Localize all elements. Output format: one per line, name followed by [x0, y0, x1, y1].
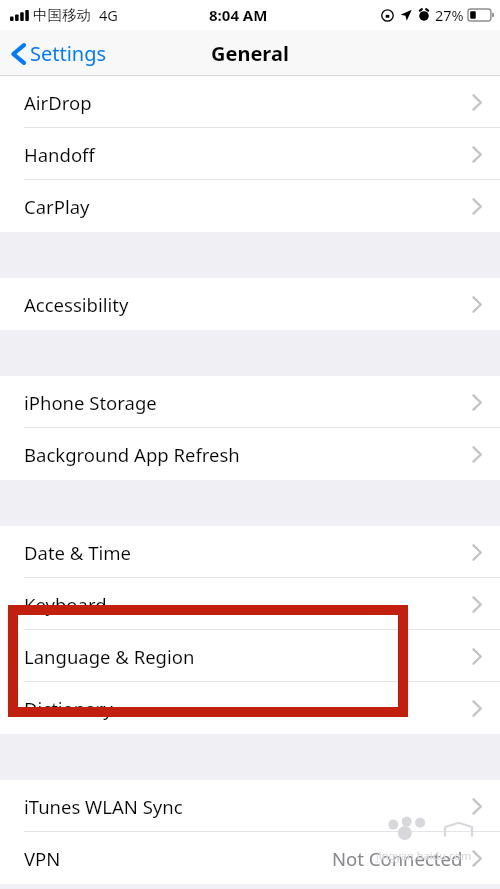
- button[interactable]: VPN: [0, 832, 500, 884]
- staticText: Not Connected: [332, 846, 463, 871]
- staticText: Language & Region: [24, 644, 195, 669]
- button[interactable]: AirDrop: [0, 76, 500, 128]
- button[interactable]: Keyboard: [0, 578, 500, 630]
- button[interactable]: Date & Time: [0, 526, 500, 578]
- button[interactable]: Background App Refresh: [0, 428, 500, 480]
- staticText: CarPlay: [24, 194, 90, 219]
- staticText: Keyboard: [24, 592, 107, 617]
- button[interactable]: Language & Region: [0, 630, 500, 682]
- button[interactable]: Handoff: [0, 128, 500, 180]
- staticText: 8:04 AM: [209, 5, 268, 25]
- button[interactable]: Dictionary: [0, 682, 500, 734]
- button[interactable]: Settings: [0, 34, 117, 73]
- staticText: Background App Refresh: [24, 442, 240, 467]
- staticText: AirDrop: [24, 90, 92, 115]
- staticText: Settings: [30, 40, 107, 67]
- button[interactable]: CarPlay: [0, 180, 500, 232]
- staticText: VPN: [24, 846, 61, 871]
- button[interactable]: iTunes WLAN Sync: [0, 780, 500, 832]
- staticText: jingyan.baidu.com: [376, 848, 472, 863]
- staticText: 4G: [99, 5, 118, 25]
- staticText: Handoff: [24, 142, 95, 167]
- button[interactable]: Accessibility: [0, 278, 500, 330]
- button[interactable]: iPhone Storage: [0, 376, 500, 428]
- staticText: Dictionary: [24, 696, 113, 721]
- staticText: Accessibility: [24, 292, 129, 317]
- staticText: iTunes WLAN Sync: [24, 794, 183, 819]
- staticText: Date & Time: [24, 540, 131, 565]
- staticText: 中国移动: [33, 6, 91, 24]
- staticText: General: [211, 40, 289, 67]
- staticText: 27%: [435, 5, 464, 25]
- staticText: iPhone Storage: [24, 390, 157, 415]
